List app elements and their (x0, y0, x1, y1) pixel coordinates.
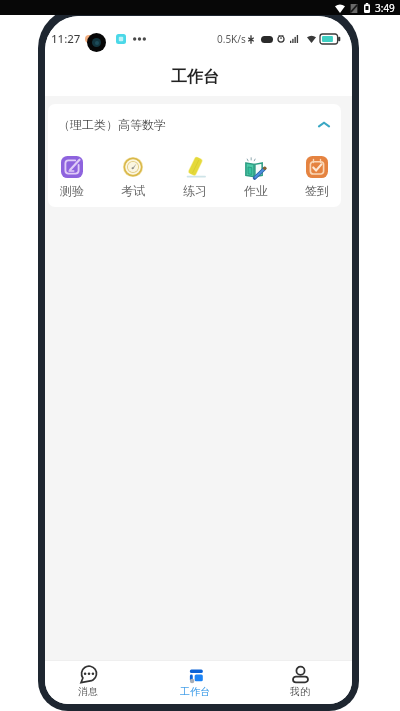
button[interactable]: 作业 (244, 156, 268, 198)
staticText: 练习 (183, 183, 207, 198)
button[interactable]: 工作台 (167, 661, 223, 698)
staticText: 作业 (244, 183, 268, 198)
button[interactable]: （理工类）高等数学 (48, 104, 341, 132)
button[interactable]: 我的 (272, 661, 328, 698)
staticText: 签到 (305, 183, 329, 198)
staticText: 消息 (78, 685, 98, 698)
button[interactable]: 练习 (183, 156, 207, 198)
staticText: 3:49 (375, 1, 395, 15)
staticText: 工作台 (171, 67, 219, 87)
button[interactable]: 测验 (60, 156, 84, 198)
button[interactable]: 签到 (305, 156, 329, 198)
staticText: 测验 (60, 183, 84, 198)
staticText: 我的 (290, 685, 310, 698)
staticText: （理工类）高等数学 (58, 117, 166, 132)
button[interactable]: 考试 (121, 156, 145, 198)
button[interactable]: 消息 (60, 661, 116, 698)
staticText: 考试 (121, 183, 145, 198)
staticText: 11:27 (51, 31, 81, 47)
staticText: 0.5K/s (217, 32, 246, 46)
other: Collapse (318, 121, 330, 128)
staticText: 工作台 (180, 685, 210, 698)
